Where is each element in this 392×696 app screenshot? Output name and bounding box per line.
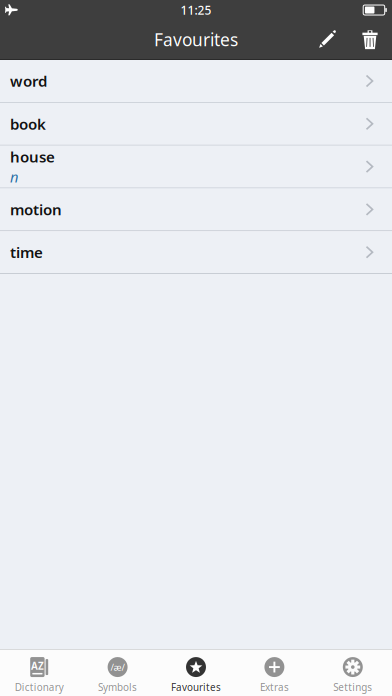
staticText: house [10, 146, 55, 167]
button[interactable]: Delete [348, 20, 392, 59]
button[interactable]: time [0, 231, 392, 274]
staticText: Extras [260, 681, 289, 694]
staticText: book [10, 113, 46, 134]
button[interactable]: AZ [0, 650, 78, 696]
staticText: Favourites [171, 681, 221, 694]
staticText: word [10, 71, 47, 91]
button[interactable]: Edit [306, 20, 348, 59]
button[interactable]: Settings [314, 650, 392, 696]
staticText: time [10, 242, 43, 262]
staticText: Dictionary [15, 681, 64, 694]
button[interactable]: book [0, 103, 392, 146]
staticText: AZ [31, 659, 44, 673]
button[interactable]: house [0, 146, 392, 188]
button[interactable]: word [0, 60, 392, 103]
button[interactable]: motion [0, 188, 392, 231]
staticText: 11:25 [180, 2, 211, 18]
staticText: n [10, 167, 18, 187]
staticText: /æ/ [111, 661, 125, 673]
staticText: motion [10, 199, 62, 220]
staticText: Settings [333, 681, 372, 694]
button[interactable]: Favourites [157, 650, 235, 696]
staticText: Symbols [98, 681, 137, 694]
button[interactable]: /æ/ [78, 650, 157, 696]
staticText: Favourites [154, 28, 238, 51]
button[interactable]: Extras [235, 650, 314, 696]
